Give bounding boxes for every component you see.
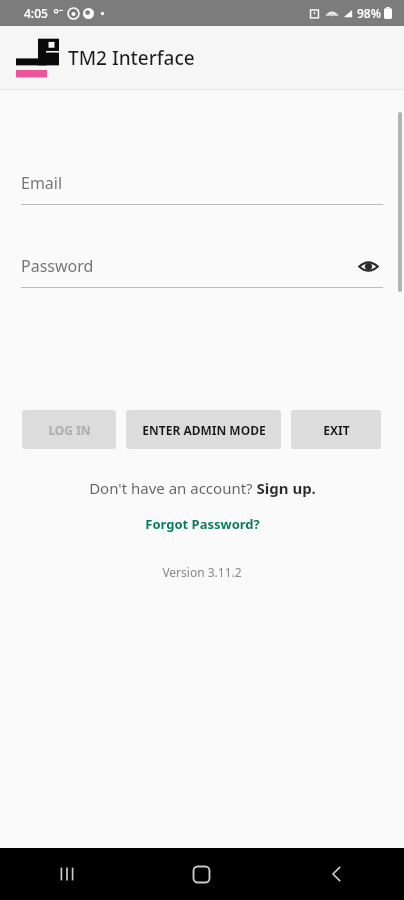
button[interactable]: ENTER ADMIN MODE — [126, 410, 281, 449]
button[interactable]: Don't have an account? Sign up. — [0, 478, 404, 498]
button[interactable]: Email — [21, 168, 383, 205]
button[interactable]: Forgot Password? — [0, 515, 404, 533]
staticText: 4:05 — [24, 5, 48, 21]
button[interactable]: EXIT — [291, 410, 381, 449]
staticText: 98% — [357, 5, 381, 21]
staticText: EXIT — [323, 422, 350, 438]
staticText: ENTER ADMIN MODE — [142, 422, 266, 438]
button[interactable]: LOG IN — [22, 410, 116, 449]
staticText: Password — [21, 255, 94, 277]
button[interactable]: Back — [269, 848, 404, 900]
staticText: Email — [21, 172, 63, 194]
button[interactable]: Home — [134, 848, 269, 900]
staticText: TM2 Interface — [68, 45, 195, 71]
button[interactable]: Recent apps — [0, 848, 134, 900]
staticText: Don't have an account? Sign up. — [89, 478, 316, 498]
staticText: Forgot Password? — [145, 515, 260, 533]
button[interactable]: Password — [21, 251, 383, 288]
staticText: Version 3.11.2 — [162, 564, 242, 580]
button[interactable]: Show password — [353, 251, 383, 281]
staticText: LOG IN — [48, 422, 91, 438]
